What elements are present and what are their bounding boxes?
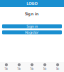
staticText: Tab bbox=[17, 67, 21, 71]
button[interactable]: Tab bbox=[26, 63, 38, 71]
button[interactable]: Tab bbox=[13, 63, 26, 71]
staticText: Tab bbox=[4, 67, 8, 71]
staticText: Register bbox=[25, 30, 39, 35]
staticText: Sign in bbox=[26, 24, 37, 29]
staticText: Tab bbox=[43, 67, 47, 71]
button[interactable]: Register bbox=[2, 30, 62, 34]
button[interactable]: Tab bbox=[0, 63, 13, 71]
button[interactable]: Sign in bbox=[2, 24, 62, 28]
button[interactable]: Tab bbox=[38, 63, 51, 71]
staticText: LOGO bbox=[26, 1, 37, 6]
staticText: Tab bbox=[56, 67, 60, 71]
staticText: Sign in bbox=[25, 11, 39, 16]
button[interactable]: Tab bbox=[51, 63, 64, 71]
staticText: Tab bbox=[30, 67, 34, 71]
